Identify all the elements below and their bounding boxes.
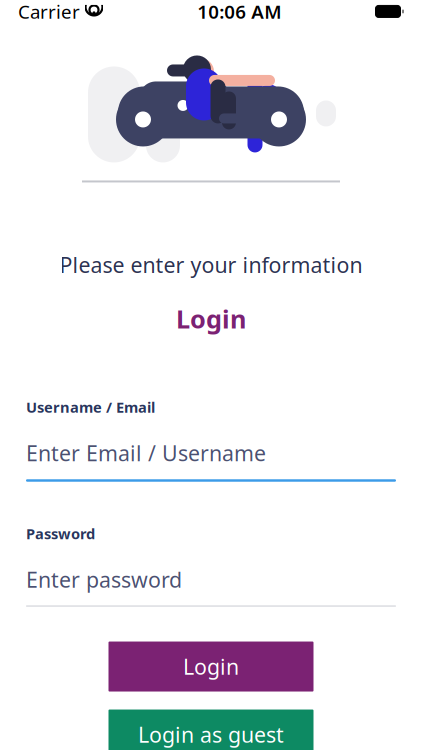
staticText: Password: [26, 524, 95, 543]
button[interactable]: Login: [108, 641, 313, 691]
button[interactable]: Login as guest: [108, 709, 313, 750]
staticText: 10:06 AM: [197, 0, 281, 24]
button[interactable]: Enter password: [26, 543, 396, 605]
staticText: Enter password: [26, 565, 182, 593]
staticText: Login as guest: [138, 720, 284, 749]
staticText: Username / Email: [26, 397, 155, 417]
staticText: Enter Email / Username: [26, 439, 266, 467]
button[interactable]: Enter Email / Username: [26, 417, 396, 479]
staticText: Carrier: [18, 0, 80, 24]
staticText: Login: [183, 652, 239, 681]
staticText: Login: [176, 302, 246, 335]
staticText: Please enter your information: [59, 250, 362, 279]
